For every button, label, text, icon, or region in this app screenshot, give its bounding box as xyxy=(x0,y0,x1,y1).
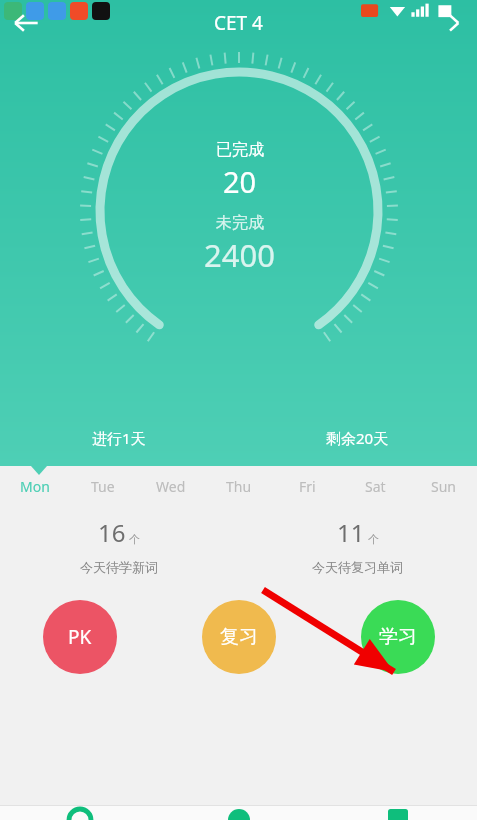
staticText: Thu xyxy=(226,477,252,496)
staticText: 16 xyxy=(98,516,126,549)
staticText: CET 4 xyxy=(214,10,263,36)
staticText: 学习 xyxy=(379,625,417,649)
staticText: PK xyxy=(68,624,92,650)
button[interactable]: Sat xyxy=(341,466,409,506)
button[interactable]: Home xyxy=(0,809,159,820)
button[interactable]: 16 xyxy=(0,506,238,596)
button[interactable]: Mon xyxy=(0,466,69,506)
staticText: 今天待学新词 xyxy=(80,559,158,575)
button[interactable]: Next xyxy=(431,0,477,46)
button[interactable]: 11 xyxy=(238,506,477,596)
button[interactable]: 学习 xyxy=(361,600,435,674)
button[interactable]: Tue xyxy=(69,466,137,506)
button[interactable]: Back xyxy=(0,0,52,46)
button[interactable]: PK xyxy=(43,600,117,674)
button[interactable]: Library xyxy=(318,809,477,820)
staticText: 复习 xyxy=(220,625,258,649)
staticText: Sun xyxy=(431,477,456,496)
button[interactable]: 复习 xyxy=(202,600,276,674)
staticText: 2400 xyxy=(204,234,275,276)
staticText: 已完成 xyxy=(216,140,264,160)
button[interactable]: Discover xyxy=(159,809,318,820)
staticText: 进行1天 xyxy=(92,428,146,448)
staticText: Wed xyxy=(156,477,186,496)
staticText: 个 xyxy=(368,532,379,546)
staticText: Mon xyxy=(20,477,50,496)
staticText: 未完成 xyxy=(216,213,264,233)
button[interactable]: Wed xyxy=(137,466,205,506)
button[interactable]: Fri xyxy=(273,466,341,506)
staticText: 个 xyxy=(129,532,140,546)
staticText: Fri xyxy=(299,477,316,496)
staticText: 20 xyxy=(223,162,257,201)
staticText: Sat xyxy=(365,477,386,496)
button[interactable]: Sun xyxy=(409,466,477,506)
staticText: Tue xyxy=(91,477,115,496)
button[interactable]: Thu xyxy=(205,466,273,506)
staticText: 11 xyxy=(337,516,365,549)
staticText: 今天待复习单词 xyxy=(312,559,403,575)
staticText: 剩余20天 xyxy=(326,428,389,448)
